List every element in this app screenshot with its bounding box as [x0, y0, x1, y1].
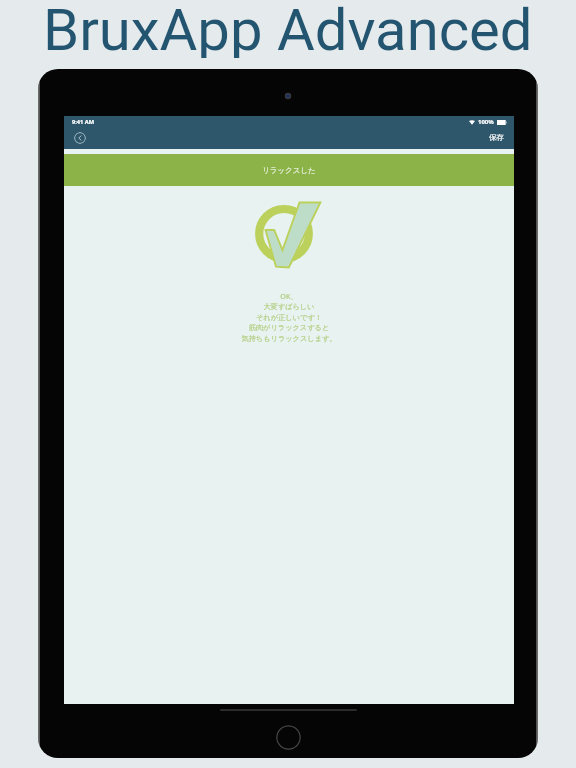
- staticText: 保存: [489, 133, 504, 142]
- button[interactable]: リラックスした: [64, 154, 514, 186]
- staticText: リラックスした: [262, 166, 316, 175]
- staticText: それが正しいです！: [64, 313, 514, 322]
- staticText: 筋肉がリラックスすると: [64, 323, 514, 332]
- staticText: 大変すばらしい: [64, 302, 514, 311]
- staticText: 9:41 AM: [72, 118, 95, 126]
- button[interactable]: Home: [276, 725, 301, 750]
- staticText: 気持ちもリラックスします。: [64, 334, 514, 343]
- staticText: BruxApp Advanced: [43, 0, 533, 58]
- staticText: 100%: [478, 118, 494, 126]
- button[interactable]: 保存: [486, 130, 507, 145]
- staticText: OK、: [64, 291, 514, 301]
- button[interactable]: Back: [74, 132, 86, 144]
